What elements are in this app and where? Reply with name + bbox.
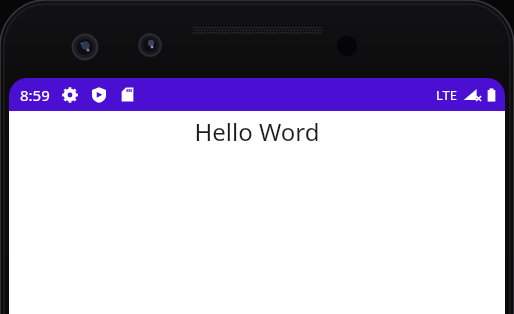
staticText: 8:59: [20, 85, 50, 105]
button[interactable]: Play Protect: [91, 87, 107, 103]
staticText: Hello Word: [9, 115, 505, 148]
button[interactable]: SD card: [120, 87, 135, 102]
other: Battery: [486, 87, 497, 103]
staticText: LTE: [436, 86, 458, 104]
button[interactable]: Settings: [62, 87, 78, 103]
other: No signal: [463, 87, 481, 102]
